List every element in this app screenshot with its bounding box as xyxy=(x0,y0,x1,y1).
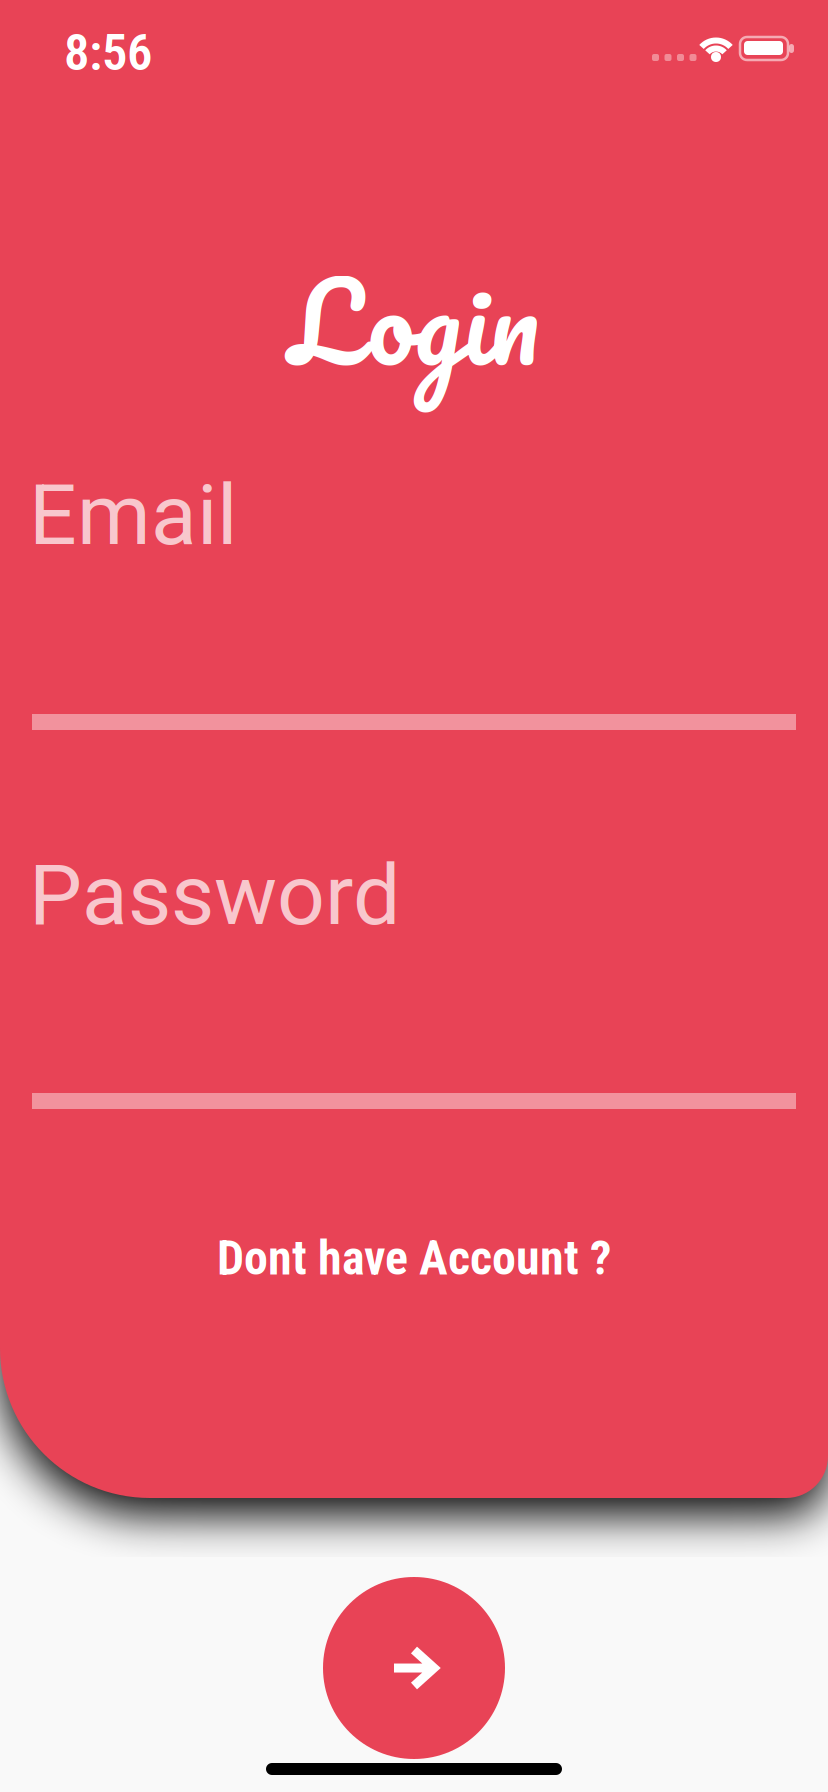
button[interactable] xyxy=(323,1577,505,1759)
staticText: Dont have Account ? xyxy=(217,1230,611,1286)
button[interactable]: Email xyxy=(0,466,828,756)
staticText: Email xyxy=(29,466,237,564)
button[interactable]: Password xyxy=(0,846,828,1136)
staticText: 8:56 xyxy=(64,23,152,82)
staticText: Login xyxy=(289,229,539,412)
staticText: Password xyxy=(29,846,400,944)
button[interactable]: Dont have Account ? xyxy=(0,1230,828,1286)
